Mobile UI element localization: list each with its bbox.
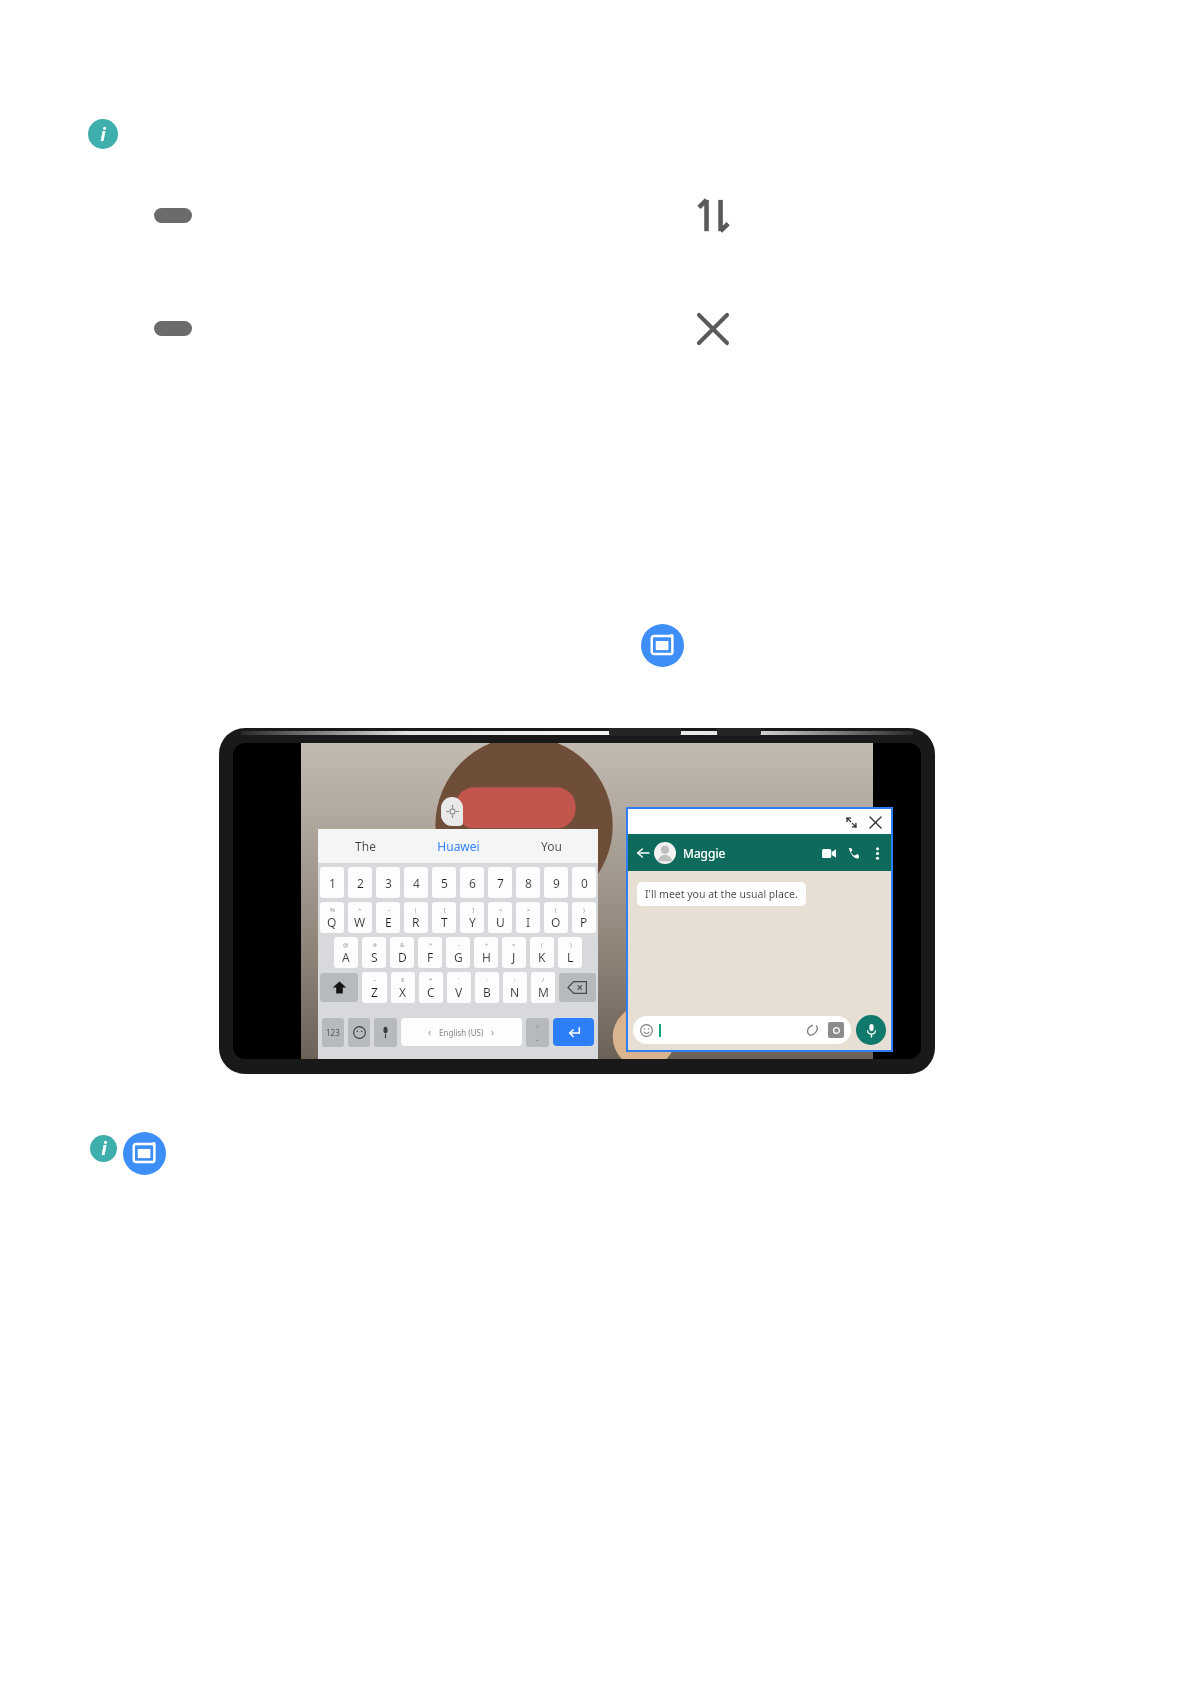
button[interactable]: ( (544, 902, 568, 933)
button[interactable]: Voice call (844, 843, 864, 863)
button[interactable]: Move window (441, 797, 463, 826)
button[interactable]: Floating window (123, 1132, 166, 1175)
staticText: ( (541, 941, 543, 949)
button[interactable]: & (390, 937, 414, 968)
staticText: : (486, 976, 488, 984)
button[interactable]: 6 (460, 867, 484, 898)
button[interactable]: ‹ (401, 1018, 522, 1046)
button[interactable]: You (505, 838, 598, 854)
staticText: * (429, 976, 433, 984)
button[interactable]: / (531, 972, 555, 1003)
button[interactable] (633, 1016, 851, 1044)
button[interactable]: 3 (376, 867, 400, 898)
staticText: < (499, 906, 503, 914)
button[interactable]: ? (526, 1018, 549, 1047)
button[interactable]: Back (634, 844, 652, 862)
button[interactable]: 8 (516, 867, 540, 898)
button[interactable]: Info (90, 1135, 117, 1162)
staticText: S (371, 949, 378, 965)
button[interactable]: 4 (404, 867, 428, 898)
button[interactable]: 9 (544, 867, 568, 898)
staticText: › (491, 1025, 495, 1039)
button[interactable]: % (320, 902, 344, 933)
button[interactable]: Step marker (154, 208, 192, 223)
staticText: A (342, 949, 350, 965)
button[interactable]: ] (460, 902, 484, 933)
button[interactable]: Info (88, 119, 118, 149)
staticText: 8 (525, 875, 532, 891)
button[interactable]: Close window (864, 811, 886, 833)
button[interactable]: Maximise (840, 811, 862, 833)
button[interactable]: > (516, 902, 540, 933)
staticText: ? (536, 1023, 539, 1031)
button[interactable]: ~ (362, 972, 387, 1003)
button[interactable]: * (419, 972, 443, 1003)
button[interactable]: Close (686, 302, 740, 356)
staticText: B (483, 984, 491, 1000)
button[interactable]: $ (391, 972, 415, 1003)
staticText: Huawei (437, 838, 480, 854)
staticText: Y (469, 914, 476, 930)
staticText: M (538, 984, 549, 1000)
staticText: i (100, 123, 106, 146)
button[interactable]: ; (503, 972, 527, 1003)
button[interactable]: + (474, 937, 498, 968)
button[interactable]: - (446, 937, 470, 968)
staticText: 3 (385, 875, 392, 891)
button[interactable]: Huawei (412, 838, 505, 854)
staticText: F (427, 949, 434, 965)
button[interactable]: ^ (348, 902, 372, 933)
staticText: D (398, 949, 407, 965)
staticText: 4 (413, 875, 420, 891)
button[interactable]: More options (869, 845, 885, 861)
button[interactable]: 1 (320, 867, 344, 898)
button[interactable]: ~ (376, 902, 400, 933)
button[interactable]: @ (334, 937, 358, 968)
button[interactable]: 7 (488, 867, 512, 898)
button[interactable]: ' (447, 972, 471, 1003)
button[interactable]: ) (572, 902, 596, 933)
button[interactable]: Swap (686, 188, 740, 242)
button[interactable]: * (418, 937, 442, 968)
button[interactable]: < (488, 902, 512, 933)
button[interactable]: 123 (322, 1018, 344, 1047)
staticText: ] (472, 906, 474, 914)
staticText: ‹ (428, 1025, 432, 1039)
button[interactable]: Floating window (641, 624, 684, 667)
staticText: 6 (469, 875, 476, 891)
button[interactable]: | (404, 902, 428, 933)
staticText: English (US) (439, 1027, 484, 1038)
button[interactable]: The (318, 838, 412, 854)
staticText: 2 (357, 875, 364, 891)
staticText: ( (555, 906, 557, 914)
staticText: & (400, 941, 405, 949)
button[interactable]: = (502, 937, 526, 968)
staticText: 7 (497, 875, 504, 891)
button[interactable] (559, 973, 596, 1002)
staticText: V (455, 984, 463, 1000)
staticText: $ (401, 976, 405, 984)
staticText: [ (444, 906, 446, 914)
button[interactable]: # (362, 937, 386, 968)
button[interactable]: Record voice message (856, 1015, 886, 1045)
button[interactable] (348, 1018, 370, 1047)
staticText: X (399, 984, 407, 1000)
button[interactable]: : (475, 972, 499, 1003)
button[interactable]: 2 (348, 867, 372, 898)
staticText: ; (514, 976, 516, 984)
button[interactable]: 5 (432, 867, 456, 898)
button[interactable]: ( (530, 937, 554, 968)
button[interactable] (374, 1018, 397, 1047)
staticText: G (454, 949, 463, 965)
staticText: Maggie (683, 845, 726, 861)
button[interactable]: [ (432, 902, 456, 933)
staticText: J (512, 949, 516, 965)
button[interactable]: Enter (553, 1018, 594, 1046)
staticText: N (510, 984, 520, 1000)
button[interactable]: Video call (819, 843, 839, 863)
button[interactable] (320, 973, 358, 1002)
button[interactable]: 0 (572, 867, 596, 898)
button[interactable]: Step marker (154, 321, 192, 336)
button[interactable]: ) (558, 937, 582, 968)
staticText: # (373, 941, 377, 949)
